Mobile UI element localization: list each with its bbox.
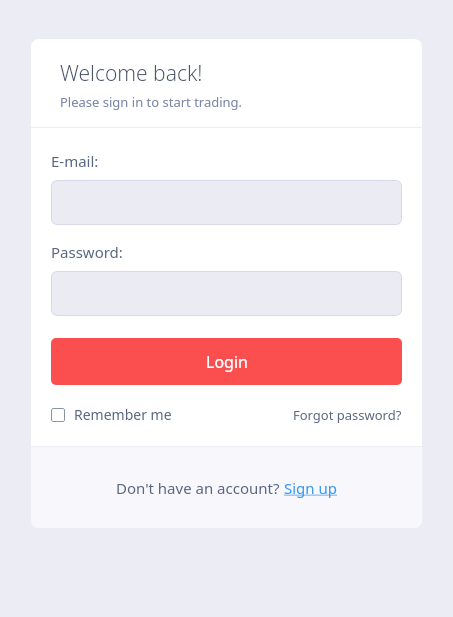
staticText: E-mail: (51, 151, 99, 171)
button[interactable]: Password input field (51, 271, 402, 316)
button[interactable]: Sign up (284, 478, 337, 498)
staticText: Login (206, 351, 248, 373)
button[interactable]: Remember me (51, 405, 172, 424)
button[interactable]: E-mail input field (51, 180, 402, 225)
staticText: Welcome back! (60, 59, 203, 88)
button[interactable]: Forgot password? (293, 406, 402, 424)
button[interactable]: Login (51, 338, 402, 385)
staticText: Don't have an account? (116, 478, 284, 498)
staticText: Forgot password? (293, 406, 402, 424)
staticText: Sign up (284, 478, 337, 498)
staticText: Password: (51, 242, 123, 262)
staticText: Remember me (74, 405, 172, 424)
staticText: Please sign in to start trading. (60, 93, 243, 111)
